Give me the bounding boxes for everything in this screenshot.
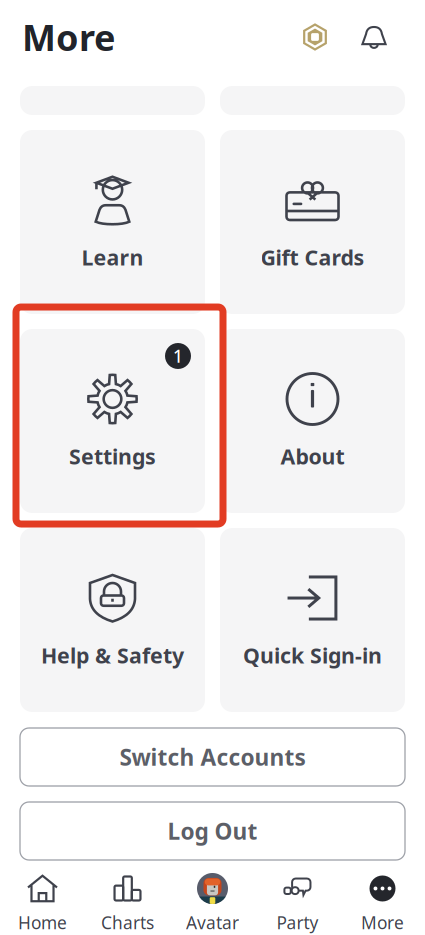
button[interactable]: Robux (294, 16, 336, 58)
button[interactable]: Settings (20, 329, 205, 513)
staticText: Settings (69, 442, 156, 470)
button[interactable]: Help & Safety (20, 528, 205, 712)
button[interactable]: Learn (20, 130, 205, 314)
staticText: More (22, 13, 115, 61)
button[interactable]: Home (0, 868, 85, 935)
staticText: Avatar (186, 911, 239, 934)
button[interactable]: More (340, 868, 425, 935)
button[interactable]: Party (255, 868, 340, 935)
staticText: More (361, 911, 404, 934)
button[interactable]: Quick Sign-in (220, 528, 405, 712)
staticText: Quick Sign-in (243, 641, 382, 669)
button[interactable]: Switch Accounts (20, 728, 405, 786)
staticText: Switch Accounts (119, 742, 305, 772)
staticText: Log Out (167, 816, 257, 846)
staticText: Gift Cards (260, 243, 364, 271)
button[interactable]: Log Out (20, 802, 405, 860)
staticText: Party (276, 911, 318, 934)
staticText: Charts (101, 911, 154, 934)
button[interactable]: Notifications (353, 16, 395, 58)
staticText: Help & Safety (41, 641, 184, 669)
staticText: Learn (81, 243, 143, 271)
staticText: Home (18, 911, 67, 934)
staticText: 1 (173, 344, 183, 367)
button[interactable]: Gift Cards (220, 130, 405, 314)
staticText: About (280, 442, 344, 470)
button[interactable]: About (220, 329, 405, 513)
button[interactable]: Avatar (170, 868, 255, 935)
button[interactable]: Charts (85, 868, 170, 935)
